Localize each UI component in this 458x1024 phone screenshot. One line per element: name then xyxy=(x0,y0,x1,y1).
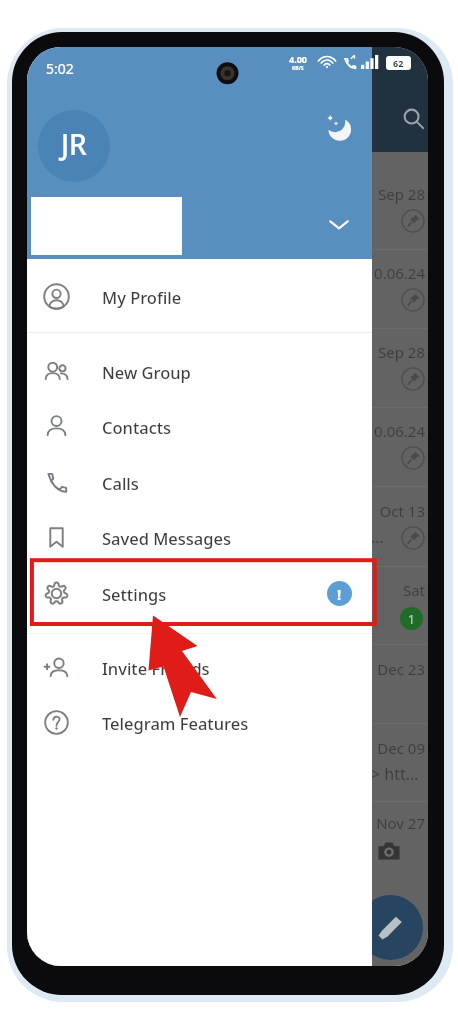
button[interactable]: New Group xyxy=(27,344,372,399)
button[interactable]: Night mode xyxy=(325,113,354,142)
button[interactable]: Contacts xyxy=(27,399,372,454)
staticText: KB/S xyxy=(292,65,304,72)
staticText: JR xyxy=(61,125,87,163)
staticText: 4.00 xyxy=(289,53,307,65)
button[interactable]: Telegram Features xyxy=(27,695,372,750)
staticText: Sep 28 xyxy=(365,342,425,362)
staticText: Invite Friends xyxy=(102,657,210,679)
staticText: Nov 27 xyxy=(365,813,425,833)
staticText: 0.06.24 xyxy=(365,421,425,441)
staticText: Sep 28 xyxy=(365,184,425,204)
staticText: Dec 23 xyxy=(365,659,425,679)
staticText: My Profile xyxy=(102,286,182,308)
button[interactable]: Settings xyxy=(27,566,372,621)
staticText: Calls xyxy=(102,472,139,494)
button[interactable]: My Profile xyxy=(27,269,372,324)
staticText: 5:02 xyxy=(46,59,74,78)
button[interactable]: Invite Friends xyxy=(27,640,372,695)
staticText: Saved Messages xyxy=(102,527,232,549)
staticText: Sat xyxy=(365,580,425,600)
button[interactable]: Saved Messages xyxy=(27,510,372,565)
button[interactable]: Compose xyxy=(358,895,423,960)
button[interactable]: Search xyxy=(402,107,426,131)
button[interactable]: Calls xyxy=(27,455,372,510)
staticText: Oct 13 xyxy=(365,501,425,521)
staticText: New Group xyxy=(102,361,191,383)
staticText: ... xyxy=(371,526,384,548)
staticText: 1 xyxy=(408,611,415,627)
staticText: Telegram Features xyxy=(102,712,249,734)
button[interactable]: Expand accounts xyxy=(324,209,354,239)
staticText: Settings xyxy=(102,583,167,605)
staticText: 62 xyxy=(393,57,404,69)
staticText: ! xyxy=(337,584,342,604)
button[interactable]: JR xyxy=(38,110,110,182)
staticText: > htt... xyxy=(371,763,419,785)
staticText: 0.06.24 xyxy=(365,263,425,283)
staticText: Dec 09 xyxy=(365,738,425,758)
staticText: Contacts xyxy=(102,416,172,438)
